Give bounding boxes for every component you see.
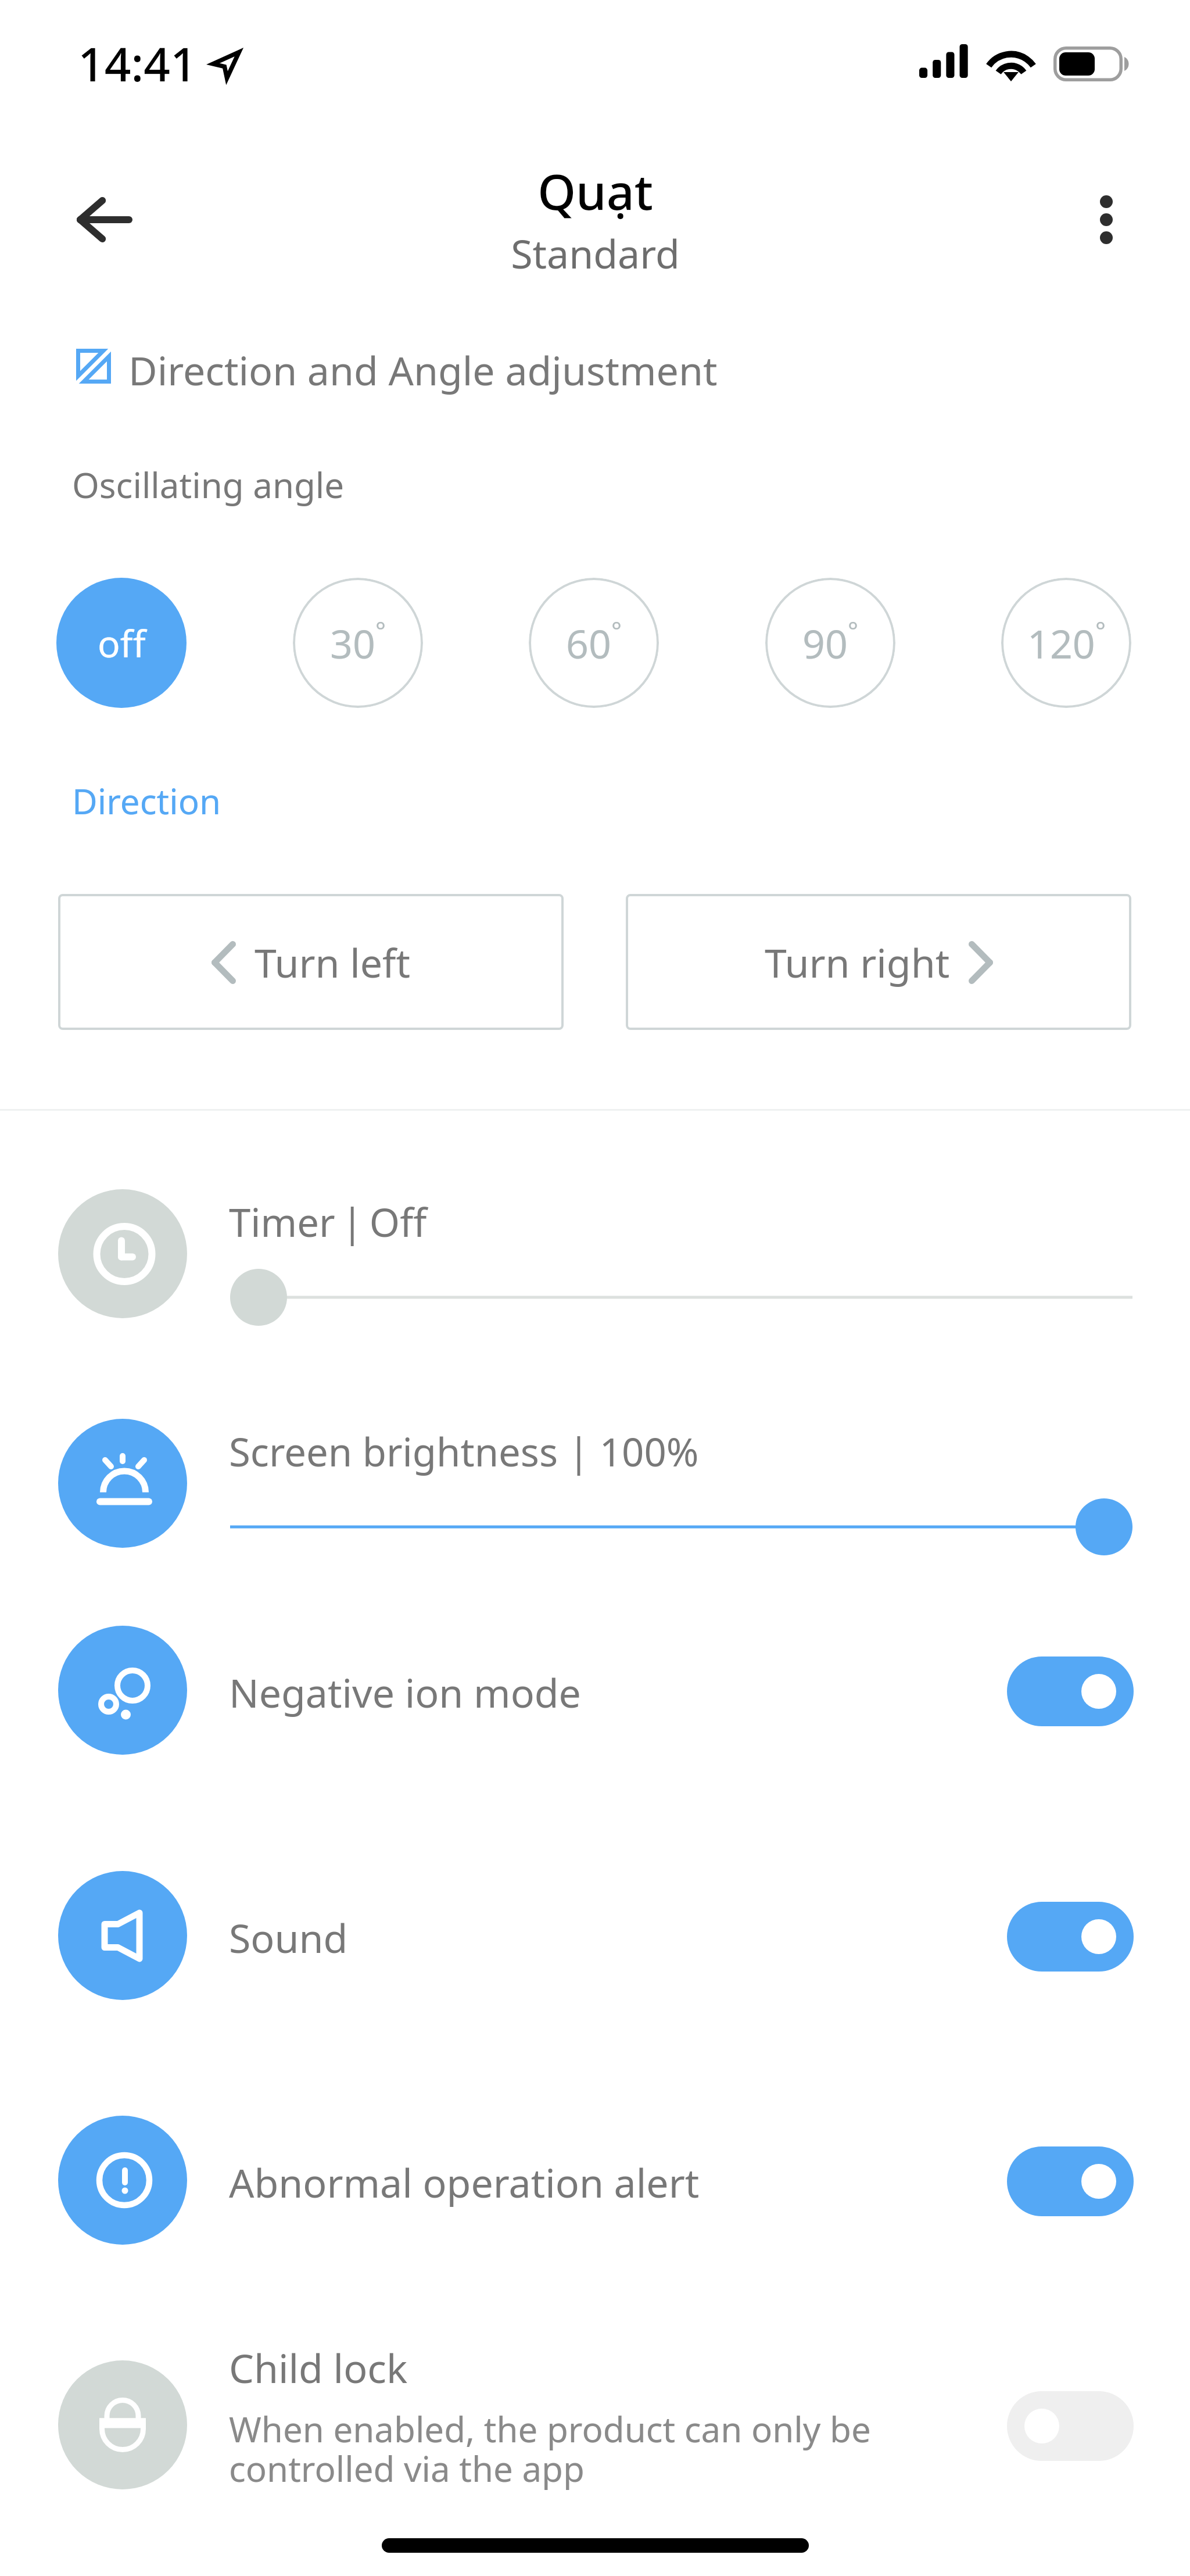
button[interactable]: Back bbox=[53, 169, 156, 271]
staticText: Oscillating angle bbox=[72, 461, 345, 509]
staticText: When enabled, the product can only be co… bbox=[229, 2405, 871, 2492]
button[interactable]: Negative ion mode bbox=[1007, 1656, 1134, 1726]
staticText: 30 bbox=[330, 616, 375, 670]
button[interactable]: 120 bbox=[1001, 578, 1131, 708]
button[interactable]: Turn right bbox=[626, 894, 1131, 1030]
staticText: ° bbox=[611, 614, 622, 647]
staticText: 60 bbox=[566, 616, 611, 670]
staticText: Turn left bbox=[255, 935, 411, 989]
button[interactable]: 60 bbox=[529, 578, 659, 708]
staticText: Sound bbox=[229, 1910, 348, 1965]
staticText: 14:41 bbox=[78, 31, 197, 95]
button[interactable]: 90 bbox=[765, 578, 895, 708]
staticText: off bbox=[98, 618, 146, 668]
staticText: Turn right bbox=[765, 935, 950, 989]
staticText: Abnormal operation alert bbox=[229, 2155, 700, 2209]
staticText: Quạt bbox=[537, 158, 653, 224]
staticText: Timer | Off bbox=[229, 1195, 427, 1248]
staticText: Child lock bbox=[229, 2341, 408, 2395]
button[interactable]: More options bbox=[1055, 169, 1157, 271]
button[interactable]: 30 bbox=[293, 578, 423, 708]
button[interactable]: Abnormal operation alert bbox=[1007, 2146, 1134, 2216]
staticText: Direction bbox=[72, 777, 221, 825]
staticText: ° bbox=[848, 614, 858, 647]
staticText: Screen brightness | 100% bbox=[229, 1425, 699, 1477]
button[interactable]: Child lock bbox=[1007, 2391, 1134, 2461]
staticText: 120 bbox=[1027, 616, 1095, 670]
staticText: ° bbox=[1095, 614, 1106, 647]
button[interactable]: Sound bbox=[1007, 1902, 1134, 1972]
staticText: ° bbox=[375, 614, 386, 647]
staticText: 90 bbox=[802, 616, 848, 670]
staticText: Standard bbox=[511, 226, 680, 280]
staticText: Negative ion mode bbox=[229, 1665, 581, 1719]
button[interactable]: off bbox=[56, 578, 187, 708]
staticText: Direction and Angle adjustment bbox=[128, 343, 718, 397]
button[interactable]: Turn left bbox=[58, 894, 564, 1030]
